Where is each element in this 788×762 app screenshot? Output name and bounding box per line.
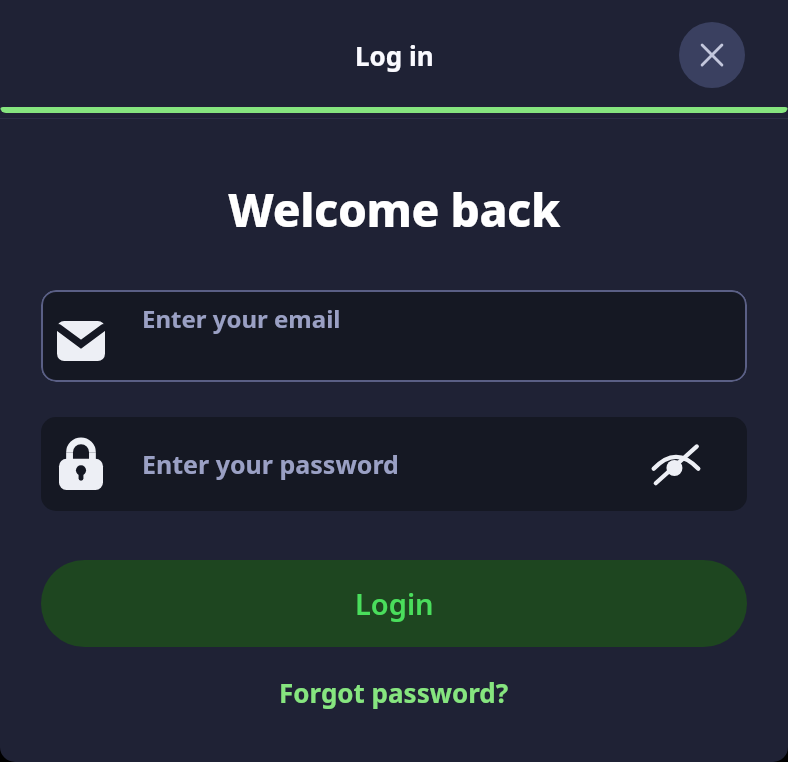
- staticText: Log in: [355, 38, 434, 73]
- staticText: Forgot password?: [279, 675, 509, 710]
- button[interactable]: Log in: [0, 0, 788, 113]
- button[interactable]: Show password: [648, 436, 704, 492]
- button[interactable]: Enter your password: [41, 417, 747, 511]
- button[interactable]: Forgot password?: [269, 669, 519, 716]
- staticText: Login: [355, 584, 434, 623]
- button[interactable]: Enter your email: [41, 290, 747, 382]
- button[interactable]: Close: [679, 22, 745, 88]
- button[interactable]: Login: [41, 560, 747, 647]
- staticText: Welcome back: [0, 178, 788, 241]
- staticText: Enter your password: [142, 447, 399, 481]
- staticText: Enter your email: [142, 302, 341, 335]
